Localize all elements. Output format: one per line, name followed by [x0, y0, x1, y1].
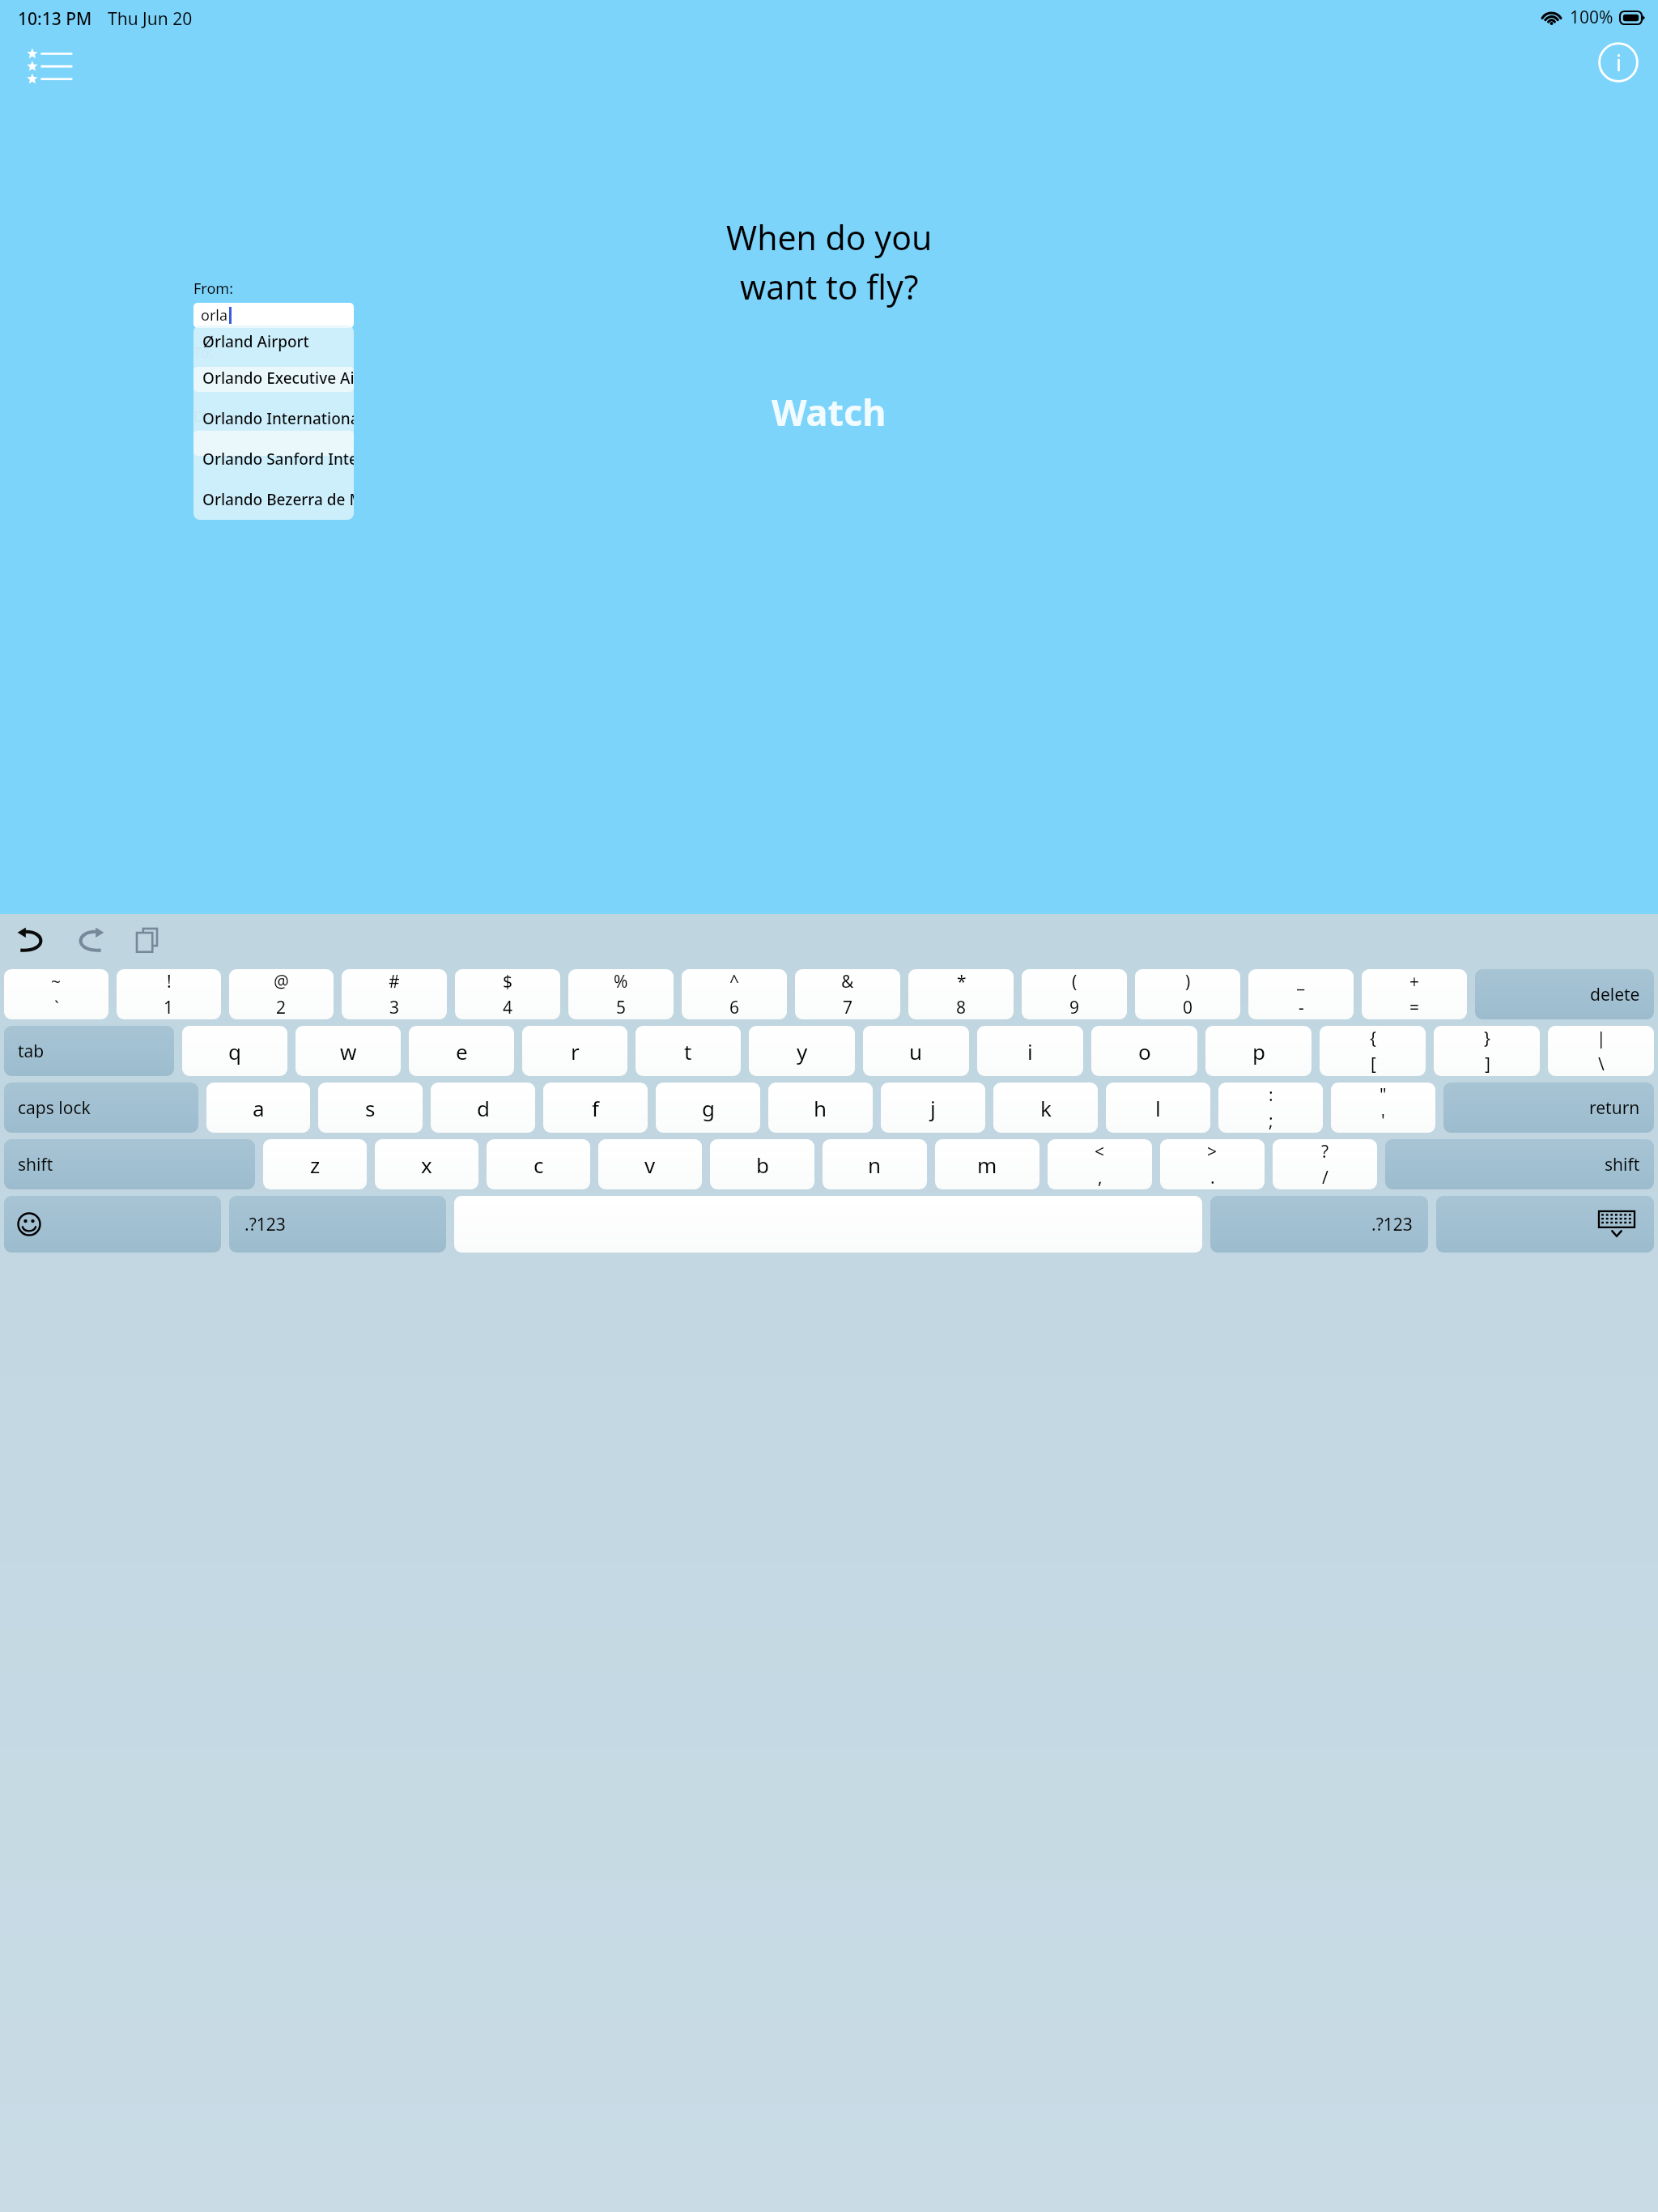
button[interactable]: " — [1331, 1083, 1435, 1133]
button[interactable]: Redo — [68, 918, 112, 962]
button[interactable]: shift — [4, 1139, 255, 1189]
button[interactable]: Ørland Airport — [193, 325, 354, 358]
button[interactable]: d — [431, 1083, 535, 1133]
staticText: y — [797, 1037, 808, 1066]
button[interactable]: m — [935, 1139, 1039, 1189]
button[interactable]: j — [881, 1083, 985, 1133]
button[interactable]: : — [1218, 1083, 1323, 1133]
button[interactable]: ? — [1273, 1139, 1377, 1189]
button[interactable]: l — [1106, 1083, 1210, 1133]
button[interactable]: g — [656, 1083, 760, 1133]
button[interactable]: _ — [1248, 969, 1354, 1019]
button[interactable]: .?123 — [1210, 1196, 1428, 1253]
staticText: 3 — [389, 996, 400, 1019]
staticText: . — [1210, 1166, 1215, 1189]
button[interactable]: y — [749, 1026, 855, 1076]
button[interactable]: o — [1091, 1026, 1197, 1076]
button[interactable]: h — [768, 1083, 873, 1133]
button[interactable]: @ — [229, 969, 334, 1019]
staticText: _ — [1297, 970, 1305, 993]
button[interactable]: f — [543, 1083, 648, 1133]
staticText: 2 — [276, 996, 287, 1019]
button[interactable]: % — [568, 969, 674, 1019]
staticText: f — [592, 1094, 599, 1122]
button[interactable]: Space — [454, 1196, 1202, 1253]
staticText: orla — [201, 305, 228, 325]
staticText: want to fly? — [740, 264, 919, 309]
staticText: ' — [1381, 1109, 1385, 1133]
staticText: w — [340, 1037, 357, 1066]
button[interactable]: v — [598, 1139, 702, 1189]
button[interactable]: * — [908, 969, 1014, 1019]
staticText: # — [389, 970, 400, 993]
staticText: Thu Jun 20 — [108, 7, 193, 31]
button[interactable]: u — [863, 1026, 969, 1076]
button[interactable]: Info — [1598, 42, 1639, 83]
button[interactable]: Orlando International Airport — [193, 398, 354, 439]
button[interactable]: Orlando Executive Airport — [193, 358, 354, 398]
button[interactable]: x — [375, 1139, 478, 1189]
button[interactable]: e — [409, 1026, 514, 1076]
button[interactable]: r — [522, 1026, 627, 1076]
button[interactable]: Paste — [126, 919, 168, 961]
staticText: 100% — [1570, 6, 1613, 29]
staticText: ; — [1269, 1109, 1273, 1133]
staticText: tab — [18, 1040, 45, 1063]
staticText: p — [1252, 1037, 1265, 1066]
button[interactable]: tab — [4, 1026, 174, 1076]
button[interactable]: k — [993, 1083, 1098, 1133]
staticText: ) — [1185, 970, 1191, 993]
staticText: 4 — [503, 996, 513, 1019]
button[interactable]: Menu — [24, 45, 78, 87]
staticText: j — [930, 1094, 936, 1122]
button[interactable]: ) — [1135, 969, 1240, 1019]
button[interactable]: ^ — [682, 969, 787, 1019]
button[interactable]: w — [295, 1026, 401, 1076]
staticText: > — [1207, 1140, 1218, 1163]
button[interactable]: p — [1205, 1026, 1312, 1076]
button[interactable]: a — [206, 1083, 310, 1133]
button[interactable] — [193, 431, 354, 456]
button[interactable]: b — [710, 1139, 814, 1189]
staticText: : — [1269, 1083, 1273, 1107]
button[interactable]: orla — [193, 303, 354, 328]
button[interactable]: ! — [117, 969, 221, 1019]
staticText: | — [1596, 1027, 1606, 1050]
button[interactable]: i — [977, 1026, 1083, 1076]
staticText: [ — [1371, 1053, 1376, 1076]
button[interactable]: Orlando Sanford International Airp — [193, 439, 354, 479]
staticText: < — [1095, 1140, 1105, 1163]
button[interactable]: n — [823, 1139, 927, 1189]
staticText: ` — [54, 996, 59, 1019]
button[interactable]: delete — [1475, 969, 1654, 1019]
button[interactable]: z — [263, 1139, 367, 1189]
staticText: r — [571, 1037, 580, 1066]
button[interactable]: Undo — [10, 918, 53, 962]
button[interactable]: Hide keyboard — [1436, 1196, 1654, 1253]
button[interactable]: & — [795, 969, 900, 1019]
staticText: k — [1040, 1094, 1052, 1122]
button[interactable]: } — [1434, 1026, 1540, 1076]
button[interactable] — [193, 367, 354, 392]
button[interactable]: { — [1320, 1026, 1426, 1076]
button[interactable]: > — [1160, 1139, 1265, 1189]
button[interactable]: c — [487, 1139, 590, 1189]
button[interactable]: ~ — [4, 969, 108, 1019]
button[interactable]: t — [636, 1026, 741, 1076]
button[interactable]: < — [1048, 1139, 1152, 1189]
button[interactable]: | — [1548, 1026, 1654, 1076]
staticText: = — [1409, 996, 1420, 1019]
button[interactable]: Emoji — [4, 1196, 221, 1253]
button[interactable]: ( — [1022, 969, 1127, 1019]
button[interactable]: caps lock — [4, 1083, 198, 1133]
button[interactable]: $ — [455, 969, 560, 1019]
button[interactable]: shift — [1385, 1139, 1654, 1189]
button[interactable]: # — [342, 969, 447, 1019]
button[interactable]: s — [318, 1083, 423, 1133]
button[interactable]: .?123 — [229, 1196, 446, 1253]
button[interactable]: return — [1443, 1083, 1654, 1133]
staticText: d — [477, 1094, 490, 1122]
button[interactable]: + — [1362, 969, 1467, 1019]
button[interactable]: q — [182, 1026, 287, 1076]
button[interactable]: Orlando Bezerra de Menezes Airp — [193, 479, 354, 520]
